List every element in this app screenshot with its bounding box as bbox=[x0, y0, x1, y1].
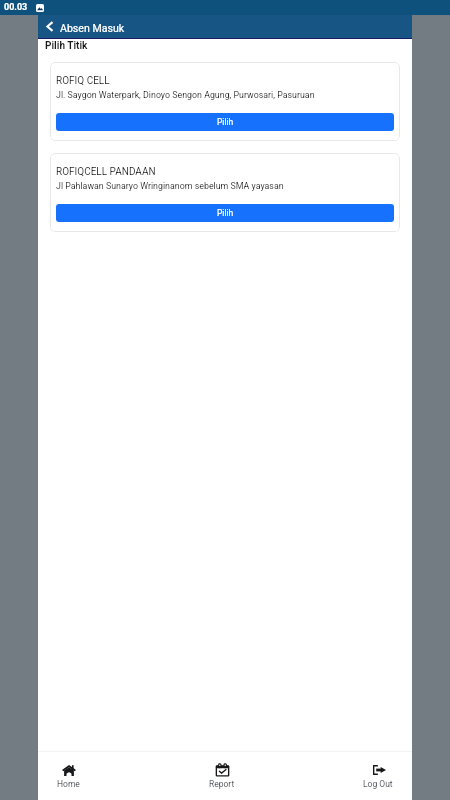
staticText: ROFIQ CELL bbox=[56, 75, 110, 87]
staticText: Pilih bbox=[217, 117, 234, 127]
button[interactable]: ROFIQ CELL bbox=[50, 62, 400, 141]
staticText: 00.03 bbox=[4, 2, 28, 13]
staticText: Absen Masuk bbox=[60, 22, 125, 34]
button[interactable]: Pilih bbox=[56, 113, 394, 131]
staticText: Pilih Titik bbox=[45, 40, 88, 52]
staticText: Jl. Saygon Waterpark, Dinoyo Sengon Agun… bbox=[56, 90, 315, 100]
button[interactable]: Log Out bbox=[353, 759, 403, 794]
staticText: Pilih bbox=[217, 208, 234, 218]
staticText: ROFIQCELL PANDAAN bbox=[56, 166, 156, 178]
button[interactable]: ROFIQCELL PANDAAN bbox=[50, 153, 400, 232]
button[interactable]: Report bbox=[199, 759, 245, 794]
button[interactable]: Home bbox=[47, 759, 90, 794]
staticText: Log Out bbox=[363, 779, 393, 789]
button[interactable]: Pilih bbox=[56, 204, 394, 222]
staticText: Jl Pahlawan Sunaryo Wringinanom sebelum … bbox=[56, 181, 284, 191]
staticText: Report bbox=[209, 779, 235, 789]
staticText: Home bbox=[57, 779, 80, 789]
button[interactable]: Back bbox=[38, 15, 60, 38]
